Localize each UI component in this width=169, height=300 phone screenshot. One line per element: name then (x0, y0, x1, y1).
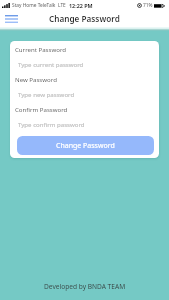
staticText: Confirm Password (15, 105, 68, 113)
staticText: New Password (15, 75, 57, 83)
staticText: LTE (58, 2, 66, 9)
button[interactable]: Change Password (17, 136, 154, 155)
staticText: 12:22 PM (69, 2, 93, 9)
button[interactable]: Open navigation menu (1, 11, 22, 27)
staticText: 71% (143, 2, 153, 9)
staticText: Stay Home TeleTalk (12, 2, 56, 9)
staticText: Change Password (49, 13, 120, 24)
staticText: Type new password (18, 90, 75, 98)
staticText: Developed by BNDA TEAM (44, 282, 126, 291)
staticText: Current Password (15, 45, 67, 53)
staticText: Type current password (18, 60, 84, 68)
staticText: Type confirm password (18, 120, 85, 128)
staticText: Change Password (56, 141, 115, 151)
